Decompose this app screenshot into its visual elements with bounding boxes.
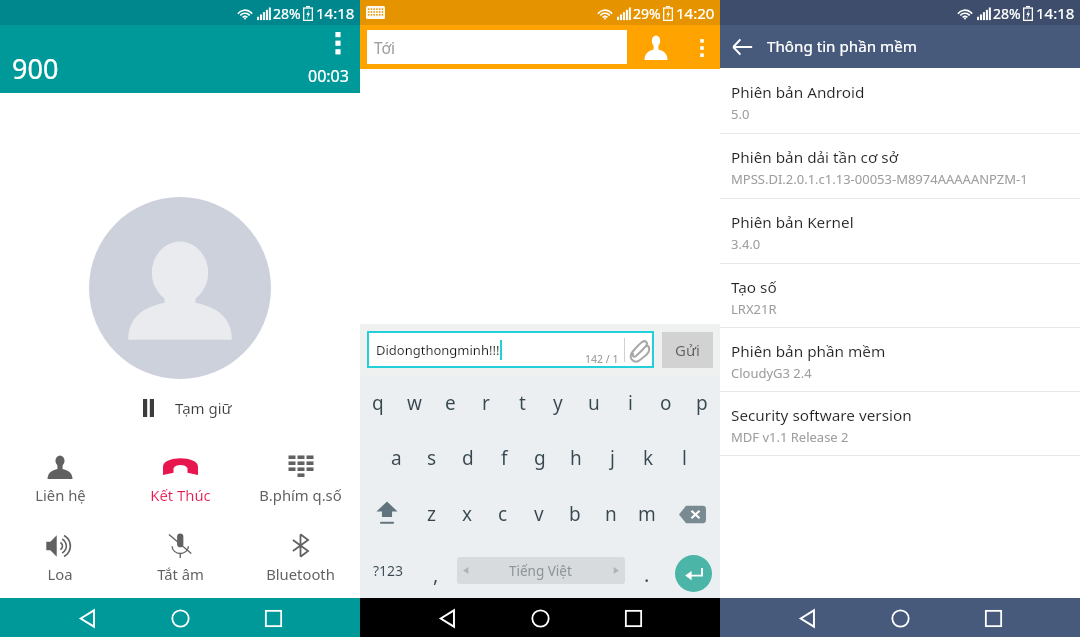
staticText: Phiên bản dải tần cơ sở xyxy=(731,147,899,168)
staticText: i xyxy=(628,390,633,416)
staticText: 900 xyxy=(12,50,59,87)
staticText: 00:03 xyxy=(308,65,349,87)
staticText: Tiếng Việt xyxy=(509,562,572,580)
staticText: 142 / 1 xyxy=(585,352,619,366)
button[interactable]: Tới xyxy=(367,30,627,64)
staticText: 5.0 xyxy=(731,105,750,123)
button[interactable]: Tạo số xyxy=(720,264,1080,327)
staticText: c xyxy=(498,501,508,527)
button[interactable]: f xyxy=(486,430,522,486)
staticText: t xyxy=(519,390,526,416)
button[interactable]: ?123 xyxy=(360,542,416,598)
staticText: 14:20 xyxy=(676,3,715,23)
staticText: z xyxy=(427,501,436,527)
button[interactable]: Tạm giữ xyxy=(143,398,232,418)
staticText: g xyxy=(534,445,546,471)
button[interactable]: Security software version xyxy=(720,392,1080,455)
staticText: a xyxy=(391,445,402,471)
button[interactable]: Shift xyxy=(360,486,414,542)
button[interactable]: q xyxy=(360,375,396,430)
button[interactable]: Home xyxy=(521,599,559,637)
staticText: Phiên bản phần mềm xyxy=(731,341,886,362)
staticText: 28% xyxy=(273,4,301,23)
button[interactable]: Phiên bản Android xyxy=(720,68,1080,133)
button[interactable]: j xyxy=(594,430,630,486)
staticText: Didongthongminh!!! xyxy=(376,341,500,359)
staticText: . xyxy=(644,561,650,588)
button[interactable]: y xyxy=(540,375,576,430)
staticText: 14:18 xyxy=(316,3,355,23)
staticText: Security software version xyxy=(731,405,912,426)
button[interactable]: Back xyxy=(788,599,826,637)
button[interactable]: p xyxy=(684,375,720,430)
staticText: p xyxy=(696,390,708,416)
button[interactable]: Recent apps xyxy=(254,599,292,637)
button[interactable]: v xyxy=(521,486,557,542)
button[interactable]: h xyxy=(558,430,594,486)
staticText: q xyxy=(372,390,384,416)
button[interactable]: Kết Thúc xyxy=(120,454,240,505)
staticText: d xyxy=(462,445,474,471)
staticText: 14:18 xyxy=(1036,3,1075,23)
staticText: Thông tin phần mềm xyxy=(767,36,917,57)
button[interactable]: e xyxy=(432,375,468,430)
button[interactable]: z xyxy=(414,486,449,542)
button[interactable]: Back xyxy=(68,599,106,637)
button[interactable]: n xyxy=(593,486,629,542)
button[interactable]: s xyxy=(414,430,450,486)
button[interactable]: Back xyxy=(720,25,764,68)
button[interactable]: l xyxy=(666,430,702,486)
button[interactable]: x xyxy=(449,486,485,542)
button[interactable]: . xyxy=(627,542,666,598)
button[interactable]: t xyxy=(504,375,540,430)
staticText: Phiên bản Kernel xyxy=(731,212,854,233)
staticText: l xyxy=(682,445,687,471)
button[interactable]: m xyxy=(629,486,665,542)
button[interactable]: Bluetooth xyxy=(240,533,360,584)
button[interactable]: Phiên bản dải tần cơ sở xyxy=(720,134,1080,198)
staticText: b xyxy=(569,501,581,527)
button[interactable]: g xyxy=(522,430,558,486)
button[interactable]: , xyxy=(416,542,455,598)
button[interactable]: r xyxy=(468,375,504,430)
button[interactable]: k xyxy=(630,430,666,486)
button[interactable]: Phiên bản phần mềm xyxy=(720,328,1080,391)
button[interactable]: Recent apps xyxy=(974,599,1012,637)
staticText: u xyxy=(588,390,600,416)
button[interactable]: Enter xyxy=(666,542,720,598)
staticText: x xyxy=(462,501,473,527)
button[interactable]: Didongthongminh!!! xyxy=(367,331,654,368)
staticText: h xyxy=(570,445,582,471)
staticText: MDF v1.1 Release 2 xyxy=(731,428,849,446)
button[interactable]: Home xyxy=(881,599,919,637)
staticText: 28% xyxy=(993,4,1021,23)
button[interactable]: Loa xyxy=(0,533,120,584)
button[interactable]: Delete xyxy=(665,486,720,542)
button[interactable]: w xyxy=(396,375,432,430)
button[interactable]: b xyxy=(557,486,593,542)
staticText: ?123 xyxy=(373,561,404,580)
button[interactable]: Liên hệ xyxy=(0,454,120,505)
button[interactable]: c xyxy=(485,486,521,542)
button[interactable]: B.phím q.số xyxy=(240,454,360,505)
button[interactable]: More options xyxy=(325,32,351,56)
button[interactable]: Recent apps xyxy=(614,599,652,637)
button[interactable]: a xyxy=(378,430,414,486)
button[interactable]: Tiếng Việt xyxy=(457,557,625,584)
button[interactable]: Phiên bản Kernel xyxy=(720,199,1080,263)
staticText: Tắt âm xyxy=(157,564,204,584)
staticText: Tới xyxy=(374,37,396,58)
button[interactable]: Back xyxy=(428,599,466,637)
button[interactable]: More options xyxy=(684,25,720,69)
button[interactable]: Tắt âm xyxy=(120,533,240,584)
button[interactable]: d xyxy=(450,430,486,486)
button[interactable]: o xyxy=(648,375,684,430)
button[interactable]: i xyxy=(612,375,648,430)
staticText: B.phím q.số xyxy=(259,485,342,505)
button[interactable]: Gửi xyxy=(662,332,713,368)
button[interactable]: Contacts xyxy=(627,25,684,69)
staticText: v xyxy=(534,501,544,527)
staticText: f xyxy=(501,445,508,471)
button[interactable]: Home xyxy=(161,599,199,637)
button[interactable]: u xyxy=(576,375,612,430)
